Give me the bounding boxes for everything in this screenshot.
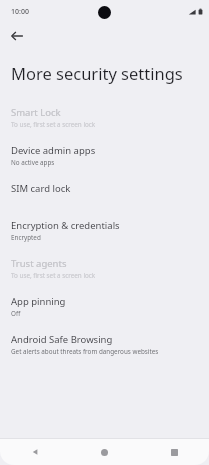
staticText: Android Safe Browsing <box>11 333 113 346</box>
staticText: To use, first set a screen lock <box>11 120 96 129</box>
staticText: 10:00 <box>11 7 29 17</box>
button[interactable]: Home <box>69 439 139 465</box>
staticText: Device admin apps <box>11 144 96 157</box>
staticText: SIM card lock <box>11 182 71 195</box>
staticText: To use, first set a screen lock <box>11 271 96 280</box>
staticText: Off <box>11 309 21 318</box>
button[interactable]: Android Safe Browsing <box>0 326 209 364</box>
staticText: Encrypted <box>11 233 41 242</box>
button[interactable]: Smart Lock <box>0 99 209 137</box>
staticText: No active apps <box>11 158 55 167</box>
button[interactable]: Device admin apps <box>0 137 209 175</box>
staticText: Get alerts about threats from dangerous … <box>11 347 159 356</box>
button[interactable]: Trust agents <box>0 250 209 288</box>
button[interactable]: SIM card lock <box>0 175 209 212</box>
staticText: More security settings <box>11 62 183 84</box>
button[interactable]: App pinning <box>0 288 209 326</box>
staticText: Encryption & credentials <box>11 219 120 232</box>
button[interactable]: Encryption & credentials <box>0 212 209 250</box>
staticText: App pinning <box>11 295 66 308</box>
staticText: Trust agents <box>11 257 67 270</box>
staticText: Smart Lock <box>11 106 61 119</box>
button[interactable]: Recent apps <box>139 439 209 465</box>
button[interactable]: Back <box>5 24 29 48</box>
button[interactable]: Back <box>0 439 69 465</box>
